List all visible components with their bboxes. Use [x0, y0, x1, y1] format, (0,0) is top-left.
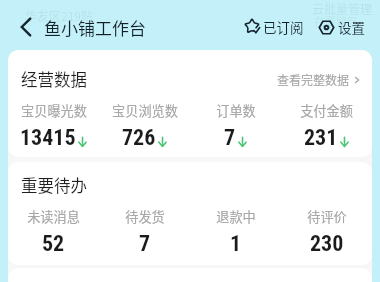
button[interactable]: 查看完整数据: [277, 71, 361, 88]
staticText: 1: [230, 231, 242, 257]
button[interactable]: 未读消息: [8, 207, 99, 257]
button[interactable]: 退款中: [190, 207, 281, 257]
button[interactable]: 待发货: [99, 207, 190, 257]
staticText: 订单数: [216, 101, 256, 120]
button[interactable]: 宝贝曝光数: [8, 101, 99, 151]
button[interactable]: 宝贝浏览数: [99, 101, 190, 151]
staticText: 宝贝浏览数: [112, 101, 178, 120]
staticText: 退款中: [216, 207, 256, 226]
staticText: 7: [139, 231, 151, 257]
staticText: 华友区219贴: [25, 7, 93, 24]
staticText: 支付金额: [300, 101, 353, 120]
staticText: 231: [304, 125, 338, 151]
staticText: 重要待办: [21, 173, 87, 197]
staticText: 7: [224, 125, 236, 151]
staticText: 经营数据: [21, 67, 87, 91]
staticText: 726: [122, 125, 156, 151]
button[interactable]: 已订阅: [244, 17, 304, 37]
staticText: 230: [310, 231, 344, 257]
staticText: 已订阅: [263, 17, 304, 37]
staticText: 未读消息: [27, 207, 80, 226]
button[interactable]: 订单数: [190, 101, 281, 151]
button[interactable]: 待评价: [281, 207, 372, 257]
staticText: 云批量管理: [312, 0, 373, 17]
staticText: 52: [42, 231, 65, 257]
button[interactable]: Back: [11, 12, 41, 42]
staticText: 待评价: [307, 207, 347, 226]
staticText: 在要留区: [314, 13, 358, 29]
button[interactable]: 设置: [319, 17, 365, 37]
staticText: 宝贝曝光数: [21, 101, 87, 120]
staticText: 待发货: [125, 207, 165, 226]
staticText: 13415: [20, 125, 76, 151]
staticText: 鱼小铺工作台: [44, 15, 146, 40]
staticText: 查看完整数据: [277, 71, 350, 88]
staticText: 设置: [338, 17, 365, 37]
button[interactable]: 支付金额: [281, 101, 372, 151]
